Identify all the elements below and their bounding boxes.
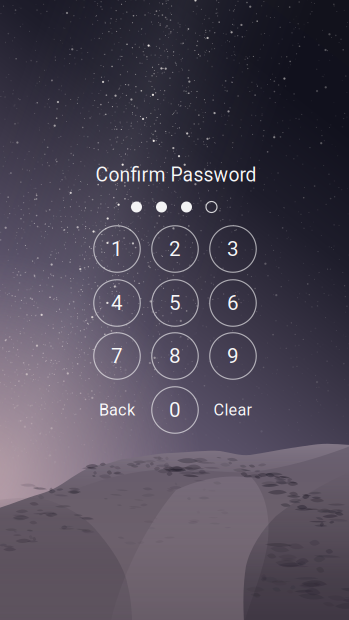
staticText: 3: [227, 237, 239, 261]
staticText: 0: [169, 398, 181, 422]
button[interactable]: 0: [152, 387, 198, 433]
button[interactable]: 3: [210, 226, 256, 272]
staticText: 6: [227, 291, 239, 315]
staticText: 5: [169, 291, 181, 315]
button[interactable]: 2: [152, 226, 198, 272]
button[interactable]: Clear: [198, 392, 268, 428]
button[interactable]: 8: [152, 333, 198, 379]
button[interactable]: Back: [82, 392, 152, 428]
staticText: Back: [99, 400, 135, 420]
button[interactable]: 7: [94, 333, 140, 379]
staticText: Confirm Password: [95, 164, 256, 186]
button[interactable]: 4: [94, 280, 140, 326]
staticText: 1: [111, 237, 123, 261]
button[interactable]: 1: [94, 226, 140, 272]
staticText: 2: [169, 237, 181, 261]
button[interactable]: 9: [210, 333, 256, 379]
button[interactable]: 6: [210, 280, 256, 326]
button[interactable]: 5: [152, 280, 198, 326]
staticText: 8: [169, 344, 181, 368]
staticText: Clear: [213, 400, 252, 420]
staticText: 4: [111, 291, 123, 315]
staticText: 7: [111, 344, 123, 368]
staticText: 9: [227, 344, 239, 368]
